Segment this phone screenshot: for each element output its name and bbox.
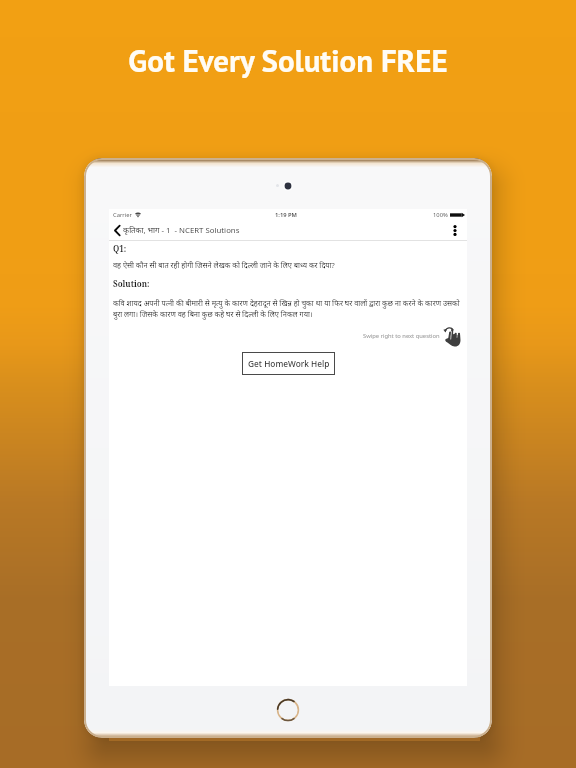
staticText: Get HomeWork Help bbox=[248, 358, 330, 369]
staticText: Q1: bbox=[113, 243, 127, 254]
staticText: कवि शायद अपनी पत्नी की बीमारी से मृत्यु … bbox=[113, 298, 463, 320]
staticText: 100% bbox=[433, 211, 448, 219]
button[interactable]: More options bbox=[447, 222, 463, 238]
staticText: कृतिका, भाग - 1 - NCERT Solutions bbox=[123, 225, 240, 236]
staticText: वह ऐसी कौन सी बात रही होगी जिसने लेखक को… bbox=[113, 260, 335, 270]
button[interactable]: Get HomeWork Help bbox=[242, 352, 335, 375]
staticText: Swipe right to next question bbox=[363, 332, 440, 340]
staticText: Solution: bbox=[113, 278, 150, 289]
staticText: 1:19 PM bbox=[275, 211, 298, 219]
button[interactable]: कृतिका, भाग - 1 - NCERT Solutions bbox=[113, 223, 241, 238]
staticText: Carrier bbox=[113, 211, 132, 219]
staticText: Got Every Solution FREE bbox=[0, 40, 576, 80]
